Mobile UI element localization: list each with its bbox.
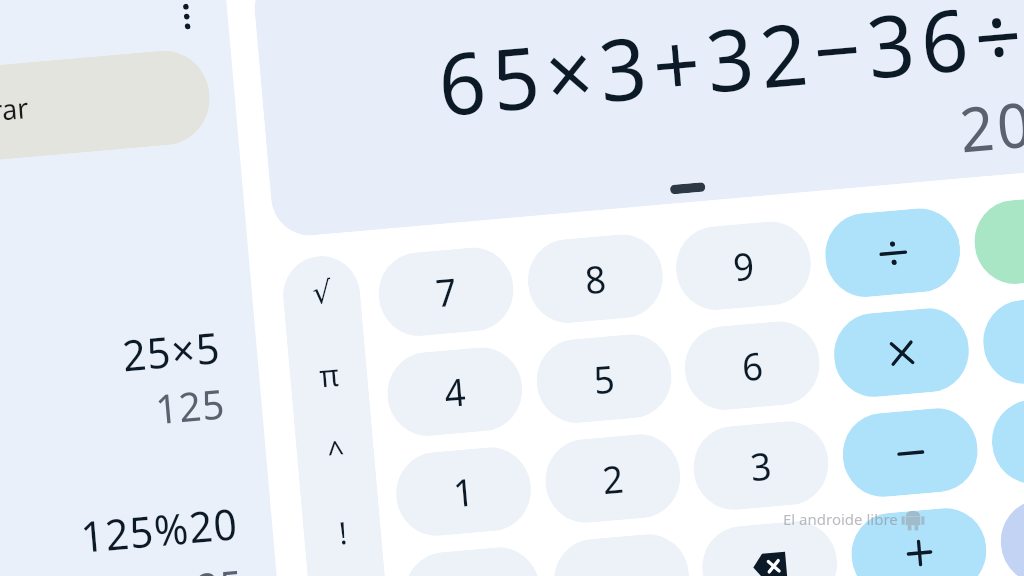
staticText: π [318,353,340,396]
button[interactable] [0,47,214,166]
button[interactable]: 6 [681,318,823,413]
button[interactable]: 5 [533,331,675,426]
button[interactable]: π [287,337,370,410]
other: + [901,534,938,572]
button[interactable]: ^ [294,414,376,486]
button[interactable]: 0 [401,544,543,576]
button[interactable]: 25 [0,557,246,576]
button[interactable]: + [848,505,990,576]
staticText: 5 [591,352,617,406]
button[interactable]: 8 [524,231,666,326]
button[interactable]: − [839,405,981,500]
button[interactable]: 25×5 [0,318,223,397]
staticText: ! [337,511,349,553]
button[interactable]: Delete [699,518,841,576]
staticText: 65×3+32−36÷2 [434,0,1024,141]
button[interactable]: × [830,305,972,400]
button[interactable]: 1 [393,444,534,539]
button[interactable]: ÷ [822,205,964,300]
button[interactable]: 125%20 [0,494,240,573]
button[interactable]: 3 [690,418,832,513]
staticText: 3 [748,439,774,493]
staticText: 2 [600,452,626,506]
staticText: 7 [433,265,459,319]
button[interactable]: 125 [0,376,227,451]
button[interactable]: ! [301,495,384,568]
staticText: 8 [582,252,608,306]
staticText: El androide libre [783,509,898,529]
button[interactable]: 7 [375,244,517,339]
button[interactable]: % [988,392,1024,487]
other: − [892,434,929,472]
button[interactable]: More options [160,0,214,45]
staticText: 9 [730,239,756,293]
staticText: Borrar [0,87,30,138]
button[interactable]: ( ) [980,292,1024,387]
staticText: √ [311,274,333,311]
other: × [884,334,921,372]
button[interactable]: AC [971,192,1024,287]
button[interactable]: 9 [672,218,814,313]
button[interactable]: 4 [384,344,526,439]
staticText: 6 [739,339,765,393]
other: ÷ [875,234,912,272]
button[interactable]: = [997,492,1024,576]
button[interactable]: 2 [542,431,684,526]
button[interactable]: √ [280,256,363,329]
staticText: 4 [442,365,468,419]
button[interactable]: . [551,531,692,576]
staticText: 205 [956,77,1024,170]
staticText: 1 [451,465,477,519]
staticText: ^ [325,429,346,472]
